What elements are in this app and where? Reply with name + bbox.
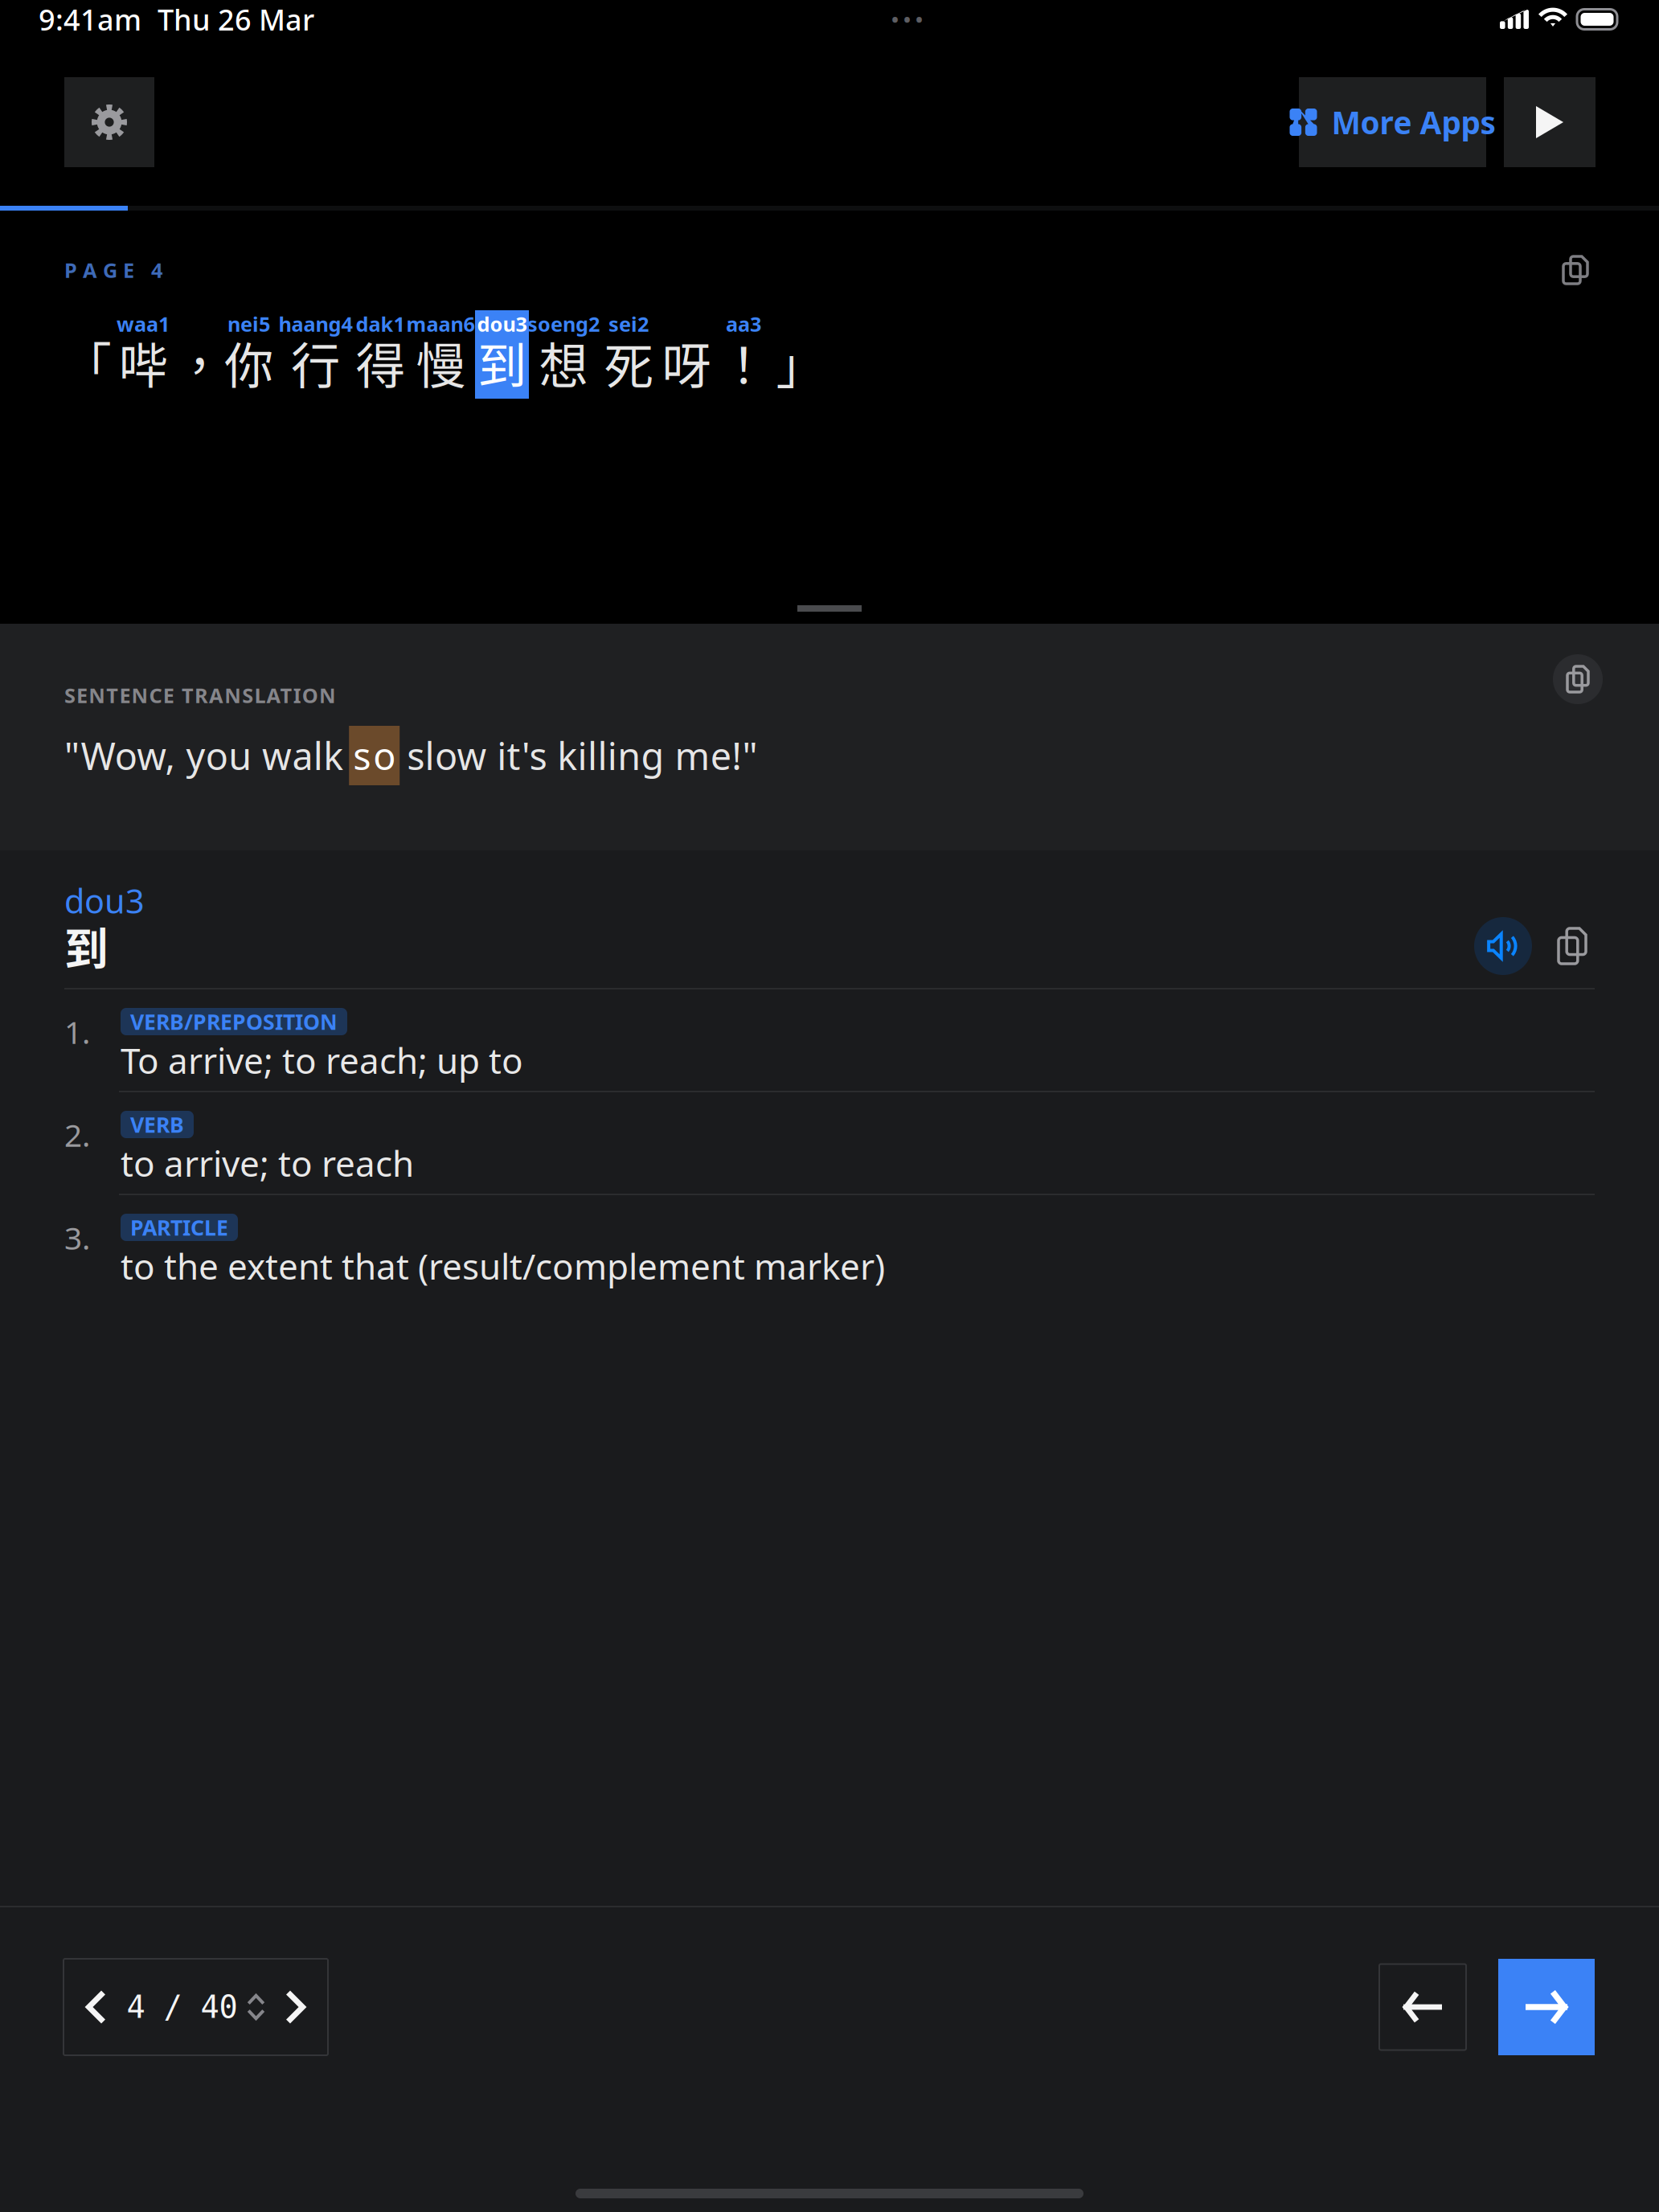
- staticText: "Wow, you walk: [64, 731, 343, 780]
- staticText: 1.: [64, 1011, 90, 1052]
- button[interactable]: Next: [1498, 1959, 1595, 2055]
- staticText: 你: [224, 327, 273, 398]
- staticText: to the extent that (result/complement ma…: [121, 1242, 885, 1289]
- staticText: nei5: [227, 310, 270, 337]
- staticText: aa3: [726, 310, 761, 337]
- button[interactable]: Copy translation: [1553, 654, 1603, 704]
- staticText: VERB/PREPOSITION: [130, 1007, 338, 1036]
- staticText: soeng2: [527, 310, 600, 337]
- staticText: To arrive; to reach; up to: [121, 1037, 523, 1084]
- staticText: 3.: [64, 1217, 90, 1258]
- staticText: 得: [356, 327, 405, 398]
- staticText: 慢: [416, 327, 465, 398]
- staticText: P A G E 4: [64, 257, 162, 284]
- button[interactable]: Copy word: [1543, 917, 1601, 975]
- button[interactable]: Next page: [265, 1960, 326, 2054]
- staticText: VERB: [130, 1110, 184, 1139]
- button[interactable]: Copy sentence: [1551, 246, 1600, 294]
- staticText: • • •: [891, 7, 923, 32]
- staticText: More Apps: [1331, 102, 1495, 143]
- staticText: slow it's killing me!": [407, 731, 758, 780]
- button[interactable]: Previous: [1379, 1964, 1466, 2050]
- staticText: 呀！」: [662, 327, 825, 398]
- button[interactable]: Play: [1504, 77, 1596, 167]
- staticText: SENTENCE TRANSLATION: [64, 682, 336, 709]
- staticText: so: [353, 731, 396, 780]
- staticText: 行: [291, 327, 340, 398]
- staticText: PARTICLE: [130, 1213, 228, 1242]
- staticText: 到: [64, 914, 109, 977]
- staticText: Thu 26 Mar: [158, 0, 314, 39]
- staticText: 想: [539, 327, 588, 398]
- staticText: haang4: [279, 310, 352, 337]
- button[interactable]: More Apps: [1299, 77, 1486, 167]
- staticText: dou3: [64, 879, 145, 923]
- staticText: dak1: [356, 310, 405, 337]
- staticText: waa1: [117, 310, 170, 337]
- staticText: 到: [477, 327, 526, 398]
- staticText: 「哔，: [62, 327, 224, 398]
- staticText: to arrive; to reach: [121, 1140, 414, 1187]
- staticText: maan6: [406, 310, 475, 337]
- staticText: 2.: [64, 1114, 90, 1155]
- staticText: dou3: [477, 310, 527, 337]
- staticText: 死: [604, 327, 653, 398]
- button[interactable]: Previous page: [66, 1960, 127, 2054]
- staticText: 4 / 40: [127, 1989, 238, 2025]
- button[interactable]: Play pronunciation: [1474, 917, 1532, 975]
- button[interactable]: Settings: [64, 77, 154, 167]
- staticText: 9:41am: [39, 0, 141, 39]
- staticText: sei2: [608, 310, 649, 337]
